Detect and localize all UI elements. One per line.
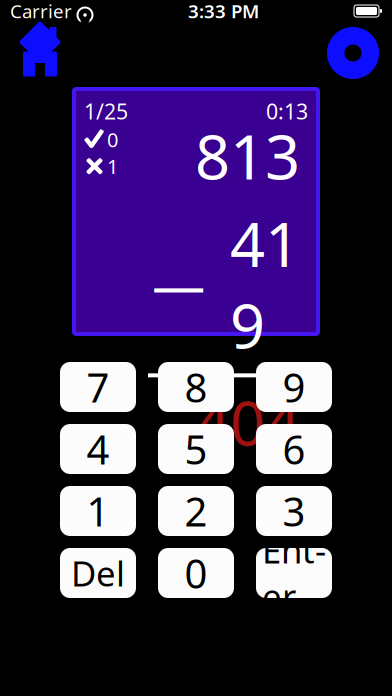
staticText: Enter (262, 527, 326, 619)
button[interactable]: Settings (326, 26, 380, 80)
staticText: 1 (107, 153, 118, 179)
staticText: 404 (195, 381, 300, 463)
staticText: 2 (184, 484, 207, 537)
staticText: Del (71, 550, 125, 596)
staticText: 9 (282, 360, 305, 413)
button[interactable]: Del (60, 548, 136, 598)
staticText: 8 (184, 360, 207, 413)
button[interactable]: 4 (60, 424, 136, 474)
button[interactable]: 6 (256, 424, 332, 474)
staticText: 813 (195, 115, 300, 196)
button[interactable]: Home (12, 25, 68, 81)
staticText: 6 (282, 422, 305, 475)
staticText: 3:33 PM (188, 0, 259, 23)
staticText: 0 (184, 546, 207, 599)
staticText: 419 (230, 202, 300, 365)
staticText: 1 (86, 484, 109, 537)
staticText: 1/25 (84, 97, 128, 125)
button[interactable]: 2 (158, 486, 234, 536)
staticText: 0 (107, 126, 118, 153)
button[interactable]: 8 (158, 362, 234, 412)
button[interactable]: 5 (158, 424, 234, 474)
staticText: 7 (86, 360, 109, 413)
button[interactable]: 0 (158, 548, 234, 598)
button[interactable]: 9 (256, 362, 332, 412)
staticText: Carrier (10, 0, 72, 23)
staticText: 3 (282, 484, 305, 537)
button[interactable]: 3 (256, 486, 332, 536)
button[interactable]: 1 (60, 486, 136, 536)
staticText: 0:13 (266, 97, 308, 125)
staticText: 5 (184, 422, 207, 475)
staticText: — (152, 248, 205, 319)
button[interactable]: 7 (60, 362, 136, 412)
button[interactable]: Enter (256, 548, 332, 598)
staticText: 4 (86, 422, 109, 475)
